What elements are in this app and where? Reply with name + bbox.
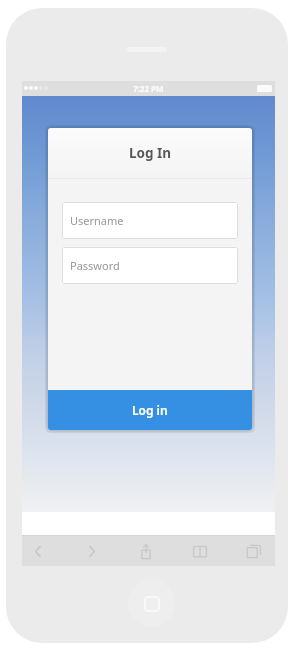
staticText: Log In	[129, 144, 172, 162]
button[interactable]: Share	[129, 536, 163, 566]
button[interactable]: Password	[62, 247, 238, 284]
button[interactable]: Bookmarks	[183, 536, 217, 566]
button[interactable]: Tabs	[237, 536, 271, 566]
staticText: Username	[70, 213, 124, 228]
button[interactable]: Back	[21, 536, 55, 566]
button[interactable]: Forward	[75, 536, 109, 566]
staticText: Password	[70, 258, 120, 273]
staticText: 7:22 PM	[133, 83, 164, 94]
staticText: Log in	[132, 402, 168, 418]
button[interactable]: Log in	[48, 390, 252, 430]
button[interactable]: Username	[62, 202, 238, 239]
